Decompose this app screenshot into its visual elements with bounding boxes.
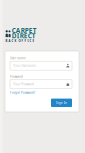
staticText: CARPET: [12, 26, 37, 35]
button[interactable]: Sign In: [51, 99, 72, 107]
staticText: DIRECT: [12, 31, 36, 40]
staticText: User name: [10, 56, 26, 60]
staticText: Your Password: [13, 82, 34, 86]
staticText: Forgot Password?: [10, 91, 35, 95]
staticText: Your Username: [13, 64, 36, 68]
staticText: B A C K O F F I C E: [6, 39, 35, 43]
button[interactable]: Forgot Password?: [10, 89, 35, 96]
staticText: Password: [10, 74, 23, 79]
staticText: Sign In: [56, 100, 67, 105]
